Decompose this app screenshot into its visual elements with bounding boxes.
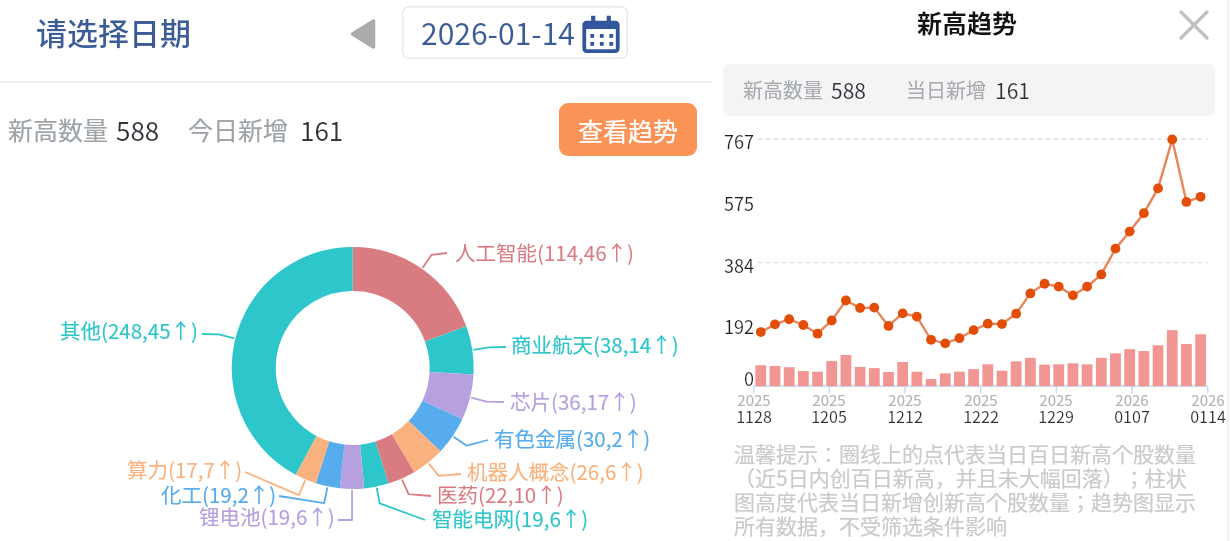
staticText: 医药(22,10↑) [437, 479, 564, 509]
staticText: 请选择日期 [36, 9, 191, 54]
button[interactable]: 关闭 [1174, 5, 1213, 44]
staticText: 今日新增 [188, 111, 289, 147]
staticText: 588 [116, 111, 160, 149]
staticText: 锂电池(19,6↑) [199, 501, 335, 531]
staticText: 0107 [1114, 404, 1150, 427]
button[interactable]: 上一个交易日 [340, 11, 385, 56]
button[interactable]: 查看趋势 [559, 103, 697, 156]
staticText: 2026-01-14 [421, 10, 576, 53]
staticText: 767 [724, 128, 754, 154]
staticText: 芯片(36,17↑) [510, 386, 637, 416]
staticText: 192 [724, 313, 754, 339]
staticText: 化工(19,2↑) [161, 479, 277, 509]
staticText: 查看趋势 [578, 112, 679, 148]
staticText: 温馨提示：圈线上的点代表当日百日新高个股数量（近5日内创百日新高，并且未大幅回落… [734, 438, 1200, 540]
staticText: 588 [831, 75, 866, 105]
staticText: 161 [995, 75, 1030, 105]
staticText: 1212 [887, 404, 923, 427]
staticText: 2025 [1039, 389, 1073, 411]
staticText: 2025 [812, 389, 846, 411]
staticText: 2026 [1115, 389, 1149, 411]
button[interactable]: 新高趋势 [897, 3, 1037, 40]
staticText: 2025 [737, 389, 771, 411]
staticText: 人工智能(114,46↑) [455, 237, 634, 267]
staticText: 1222 [963, 404, 999, 427]
staticText: 384 [724, 252, 754, 278]
staticText: 新高数量 [743, 75, 823, 104]
staticText: 机器人概念(26,6↑) [467, 456, 644, 486]
staticText: 新高趋势 [917, 4, 1018, 40]
staticText: 2025 [964, 389, 998, 411]
staticText: 新高数量 [8, 111, 109, 147]
staticText: 商业航天(38,14↑) [511, 329, 679, 359]
staticText: 有色金属(30,2↑) [494, 423, 651, 453]
staticText: 1229 [1038, 404, 1074, 427]
button[interactable]: 2026-01-14 [402, 6, 628, 59]
staticText: 0114 [1190, 404, 1226, 427]
staticText: 算力(17,7↑) [127, 454, 243, 484]
staticText: 575 [724, 190, 754, 216]
staticText: 当日新增 [906, 75, 986, 104]
staticText: 0 [744, 365, 754, 391]
staticText: 智能电网(19,6↑) [432, 503, 589, 533]
staticText: 1205 [811, 404, 847, 427]
staticText: 161 [300, 111, 344, 149]
staticText: 其他(248,45↑) [60, 315, 198, 345]
staticText: 1128 [736, 404, 772, 427]
staticText: 2025 [888, 389, 922, 411]
staticText: 2026 [1191, 389, 1225, 411]
